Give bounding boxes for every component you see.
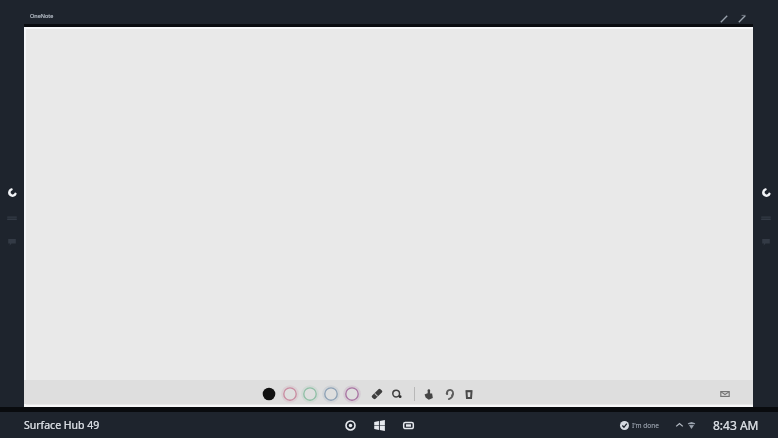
button[interactable]: Back xyxy=(340,412,360,438)
button[interactable]: Delete xyxy=(460,385,478,403)
button[interactable]: Pen xyxy=(301,385,319,403)
button[interactable]: OneNote xyxy=(30,12,54,19)
button[interactable]: Undo xyxy=(441,385,459,403)
button[interactable]: Notes xyxy=(756,232,776,252)
button[interactable]: Eraser xyxy=(368,385,386,403)
button[interactable]: Pen xyxy=(322,385,340,403)
button[interactable]: Show hidden icons xyxy=(669,412,689,438)
button[interactable]: I'm done xyxy=(618,419,661,432)
button[interactable]: Call xyxy=(756,182,776,202)
button[interactable]: Touch xyxy=(420,385,438,403)
button[interactable]: Volume xyxy=(2,208,22,228)
button[interactable]: 8:43 AM xyxy=(713,417,759,433)
button[interactable]: Black pen xyxy=(260,385,278,403)
button[interactable]: Pen xyxy=(343,385,361,403)
button[interactable]: Volume xyxy=(756,208,776,228)
button[interactable]: Select xyxy=(388,385,406,403)
button[interactable]: Surface Hub 49 xyxy=(24,418,100,432)
button[interactable]: Expand xyxy=(735,12,749,26)
button[interactable]: Task view xyxy=(398,412,418,438)
button[interactable]: Email xyxy=(716,385,734,403)
button[interactable]: Pen xyxy=(281,385,299,403)
staticText: I'm done xyxy=(632,421,659,430)
button[interactable]: Security xyxy=(681,412,701,438)
button[interactable]: Start xyxy=(369,412,389,438)
button[interactable]: Call xyxy=(2,182,22,202)
button[interactable]: Minimize xyxy=(717,12,731,26)
staticText: OneNote xyxy=(30,12,54,19)
button[interactable]: Notes xyxy=(2,232,22,252)
